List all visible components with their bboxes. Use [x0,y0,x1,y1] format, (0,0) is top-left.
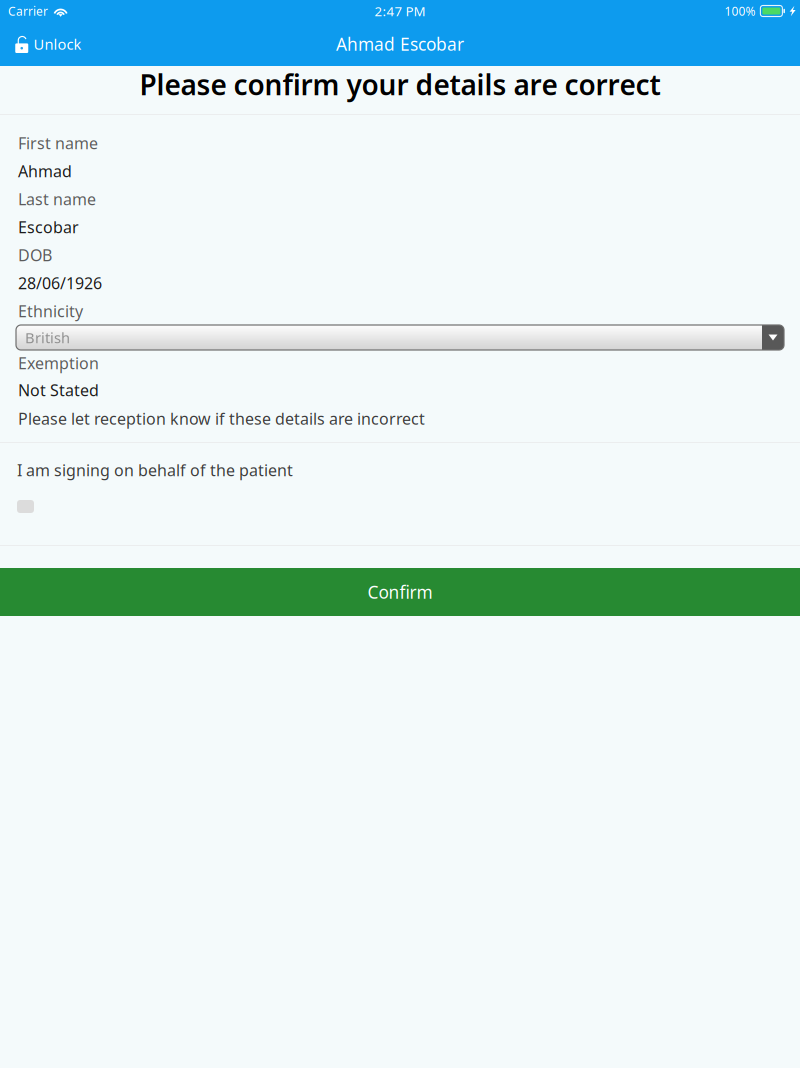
staticText: Carrier [8,3,48,19]
button[interactable]: Signing on behalf of the patient [17,484,34,522]
staticText: Ethnicity [18,300,83,322]
staticText: Please confirm your details are correct [139,66,660,103]
staticText: Escobar [18,216,79,238]
button[interactable]: Ethnicity: British [0,325,800,350]
staticText: Not Stated [18,379,99,401]
staticText: Confirm [367,580,432,603]
staticText: I am signing on behalf of the patient [17,459,293,481]
staticText: Please let reception know if these detai… [18,408,425,429]
staticText: First name [18,132,98,154]
button[interactable]: Unlock [0,22,91,66]
button[interactable]: Confirm [0,568,800,616]
staticText: Ahmad Escobar [336,32,464,55]
staticText: DOB [18,244,52,266]
staticText: 2:47 PM [374,2,425,20]
staticText: Ahmad [18,160,72,182]
staticText: Exemption [18,352,99,374]
staticText: 100% [724,3,755,19]
staticText: Last name [18,188,96,210]
staticText: Unlock [33,34,81,54]
staticText: 28/06/1926 [18,272,102,294]
staticText: British [25,328,70,347]
